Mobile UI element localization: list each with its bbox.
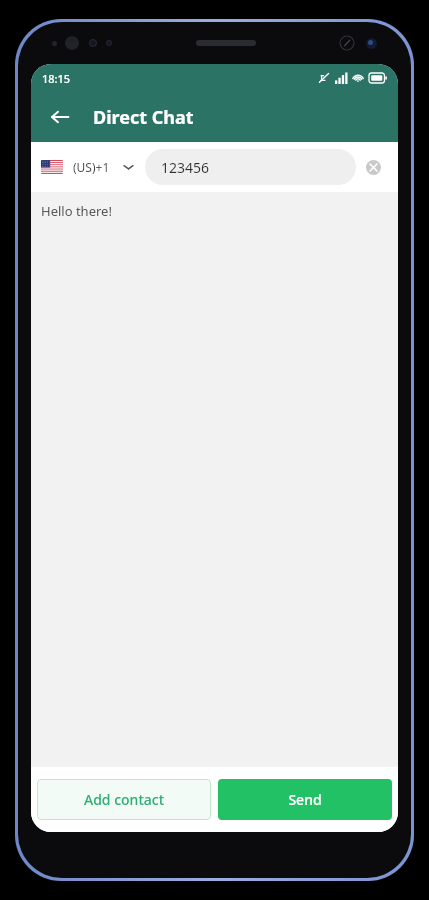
staticText: Send <box>288 790 322 809</box>
button[interactable]: Add contact <box>37 779 211 820</box>
button[interactable]: Back <box>39 96 81 138</box>
staticText: 123456 <box>161 158 210 177</box>
staticText: Add contact <box>84 790 164 809</box>
button[interactable]: Send <box>218 779 392 820</box>
button[interactable]: 123456 <box>145 149 356 185</box>
staticText: (US)+1 <box>73 159 110 175</box>
staticText: Direct Chat <box>93 105 194 130</box>
staticText: Hello there! <box>41 202 112 220</box>
button[interactable]: Clear <box>356 150 390 184</box>
button[interactable]: (US)+1 <box>39 155 135 179</box>
staticText: 18:15 <box>42 71 71 86</box>
